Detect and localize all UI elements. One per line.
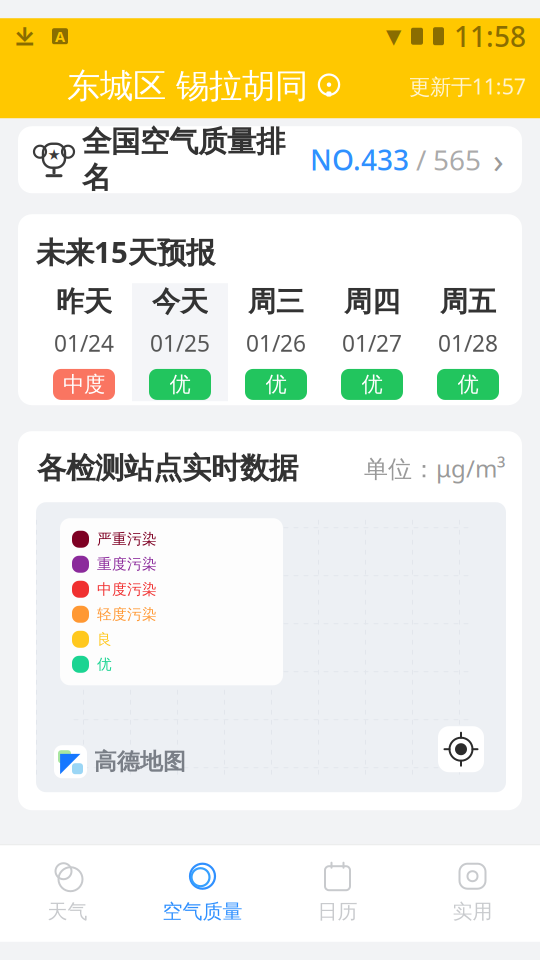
staticText: 优	[169, 371, 190, 397]
staticText: 东城区 锡拉胡同	[67, 66, 308, 107]
staticText: 重度污染	[97, 555, 157, 573]
staticText: ★	[47, 146, 60, 163]
staticText: ◤	[60, 747, 81, 777]
staticText: 优	[265, 371, 286, 397]
staticText: ⤓	[14, 21, 36, 51]
staticText: 01/28	[438, 328, 498, 358]
staticText: 空气质量	[162, 899, 242, 924]
staticText: 周四	[344, 284, 400, 319]
staticText: ›	[493, 137, 504, 183]
staticText: 今天	[152, 284, 208, 319]
staticText: 更新于11:57	[409, 72, 526, 100]
button[interactable]: ★	[18, 126, 522, 193]
button[interactable]: 昨天	[36, 272, 132, 412]
staticText: 01/25	[150, 328, 210, 358]
staticText: 良	[97, 630, 112, 648]
staticText: 周三	[248, 284, 304, 319]
button[interactable]: 天气	[0, 851, 135, 932]
staticText: 优	[97, 655, 112, 673]
button[interactable]: 周六	[516, 272, 540, 412]
staticText: 未来15天预报	[36, 232, 215, 271]
staticText: 高德地图	[94, 748, 186, 776]
staticText: 优	[361, 371, 382, 397]
button[interactable]: 东城区 锡拉胡同	[67, 66, 342, 107]
staticText: 实用	[452, 899, 492, 924]
button[interactable]: 周四	[324, 272, 420, 412]
button[interactable]: 定位	[438, 726, 484, 772]
staticText: 单位：μg/m³	[364, 452, 505, 484]
staticText: 各检测站点实时数据	[37, 450, 298, 486]
staticText: 11:58	[454, 18, 526, 55]
button[interactable]: 实用	[405, 851, 540, 932]
staticText: A	[55, 26, 65, 46]
staticText: 01/26	[246, 328, 306, 358]
staticText: 严重污染	[97, 530, 157, 548]
staticText: 昨天	[56, 284, 112, 319]
staticText: 天气	[47, 899, 87, 924]
button[interactable]: 今天	[132, 272, 228, 412]
staticText: NO.433	[310, 141, 409, 178]
staticText: 01/27	[342, 328, 402, 358]
button[interactable]: 空气质量	[135, 851, 270, 932]
staticText: 全国空气质量排名	[82, 124, 285, 196]
staticText: 优	[457, 371, 478, 397]
staticText: / 565	[409, 141, 481, 178]
staticText: ▼	[386, 25, 401, 48]
staticText: 日历	[317, 899, 357, 924]
button[interactable]: 日历	[270, 851, 405, 932]
button[interactable]: 周三	[228, 272, 324, 412]
staticText: 周五	[440, 284, 496, 319]
staticText: 中度	[63, 371, 105, 397]
staticText: 中度污染	[97, 580, 157, 598]
staticText: 轻度污染	[97, 605, 157, 623]
button[interactable]: 周五	[420, 272, 516, 412]
staticText: 01/24	[54, 328, 114, 358]
